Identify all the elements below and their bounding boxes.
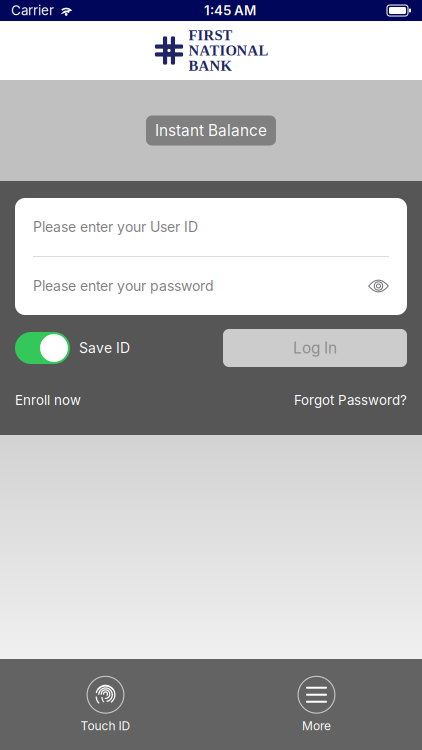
button[interactable]: Log In <box>223 329 407 367</box>
button[interactable]: Enroll now <box>15 392 81 408</box>
button[interactable]: Touch ID <box>50 676 160 733</box>
button[interactable]: Show password <box>368 277 389 294</box>
staticText: Enroll now <box>15 392 81 408</box>
staticText: Please enter your password <box>33 277 214 294</box>
staticText: NATIONAL <box>188 42 268 59</box>
button[interactable]: Save ID <box>15 332 130 364</box>
staticText: 1:45 AM <box>204 2 256 18</box>
staticText: Save ID <box>79 339 130 356</box>
staticText: More <box>302 719 331 733</box>
staticText: Log In <box>293 339 337 357</box>
staticText: BANK <box>188 58 231 74</box>
staticText: Touch ID <box>80 719 130 733</box>
staticText: Please enter your User ID <box>33 218 198 235</box>
staticText: Instant Balance <box>155 121 267 140</box>
button[interactable]: Forgot Password? <box>294 392 407 408</box>
staticText: FIRST <box>188 27 232 43</box>
staticText: Carrier <box>11 2 54 18</box>
button[interactable]: More <box>261 676 371 733</box>
staticText: Forgot Password? <box>294 392 407 408</box>
button[interactable]: Instant Balance <box>146 115 276 145</box>
